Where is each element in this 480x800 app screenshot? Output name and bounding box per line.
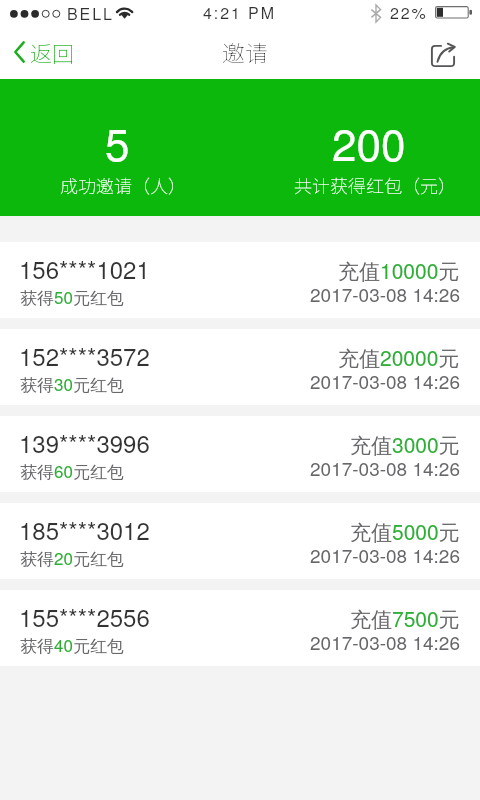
staticText: 2017-03-08 14:26 bbox=[310, 454, 460, 481]
staticText: 22% bbox=[390, 1, 428, 24]
button[interactable]: Share bbox=[418, 33, 467, 79]
staticText: 获得50元红包 bbox=[20, 284, 124, 309]
button[interactable]: 139****3996 bbox=[0, 416, 480, 492]
staticText: 2017-03-08 14:26 bbox=[310, 628, 460, 655]
staticText: 充值3000元 bbox=[350, 429, 460, 459]
staticText: 充值20000元 bbox=[338, 342, 460, 372]
staticText: 获得30元红包 bbox=[20, 371, 124, 396]
staticText: 5 bbox=[105, 110, 130, 173]
staticText: 邀请 bbox=[222, 35, 268, 68]
staticText: 获得40元红包 bbox=[20, 632, 124, 657]
staticText: BELL bbox=[67, 2, 114, 25]
staticText: 139****3996 bbox=[19, 425, 150, 459]
staticText: 185****3012 bbox=[19, 512, 150, 546]
staticText: 返回 bbox=[30, 36, 75, 68]
button[interactable]: 152****3572 bbox=[0, 329, 480, 405]
button[interactable]: 156****1021 bbox=[0, 242, 480, 318]
staticText: 2017-03-08 14:26 bbox=[310, 280, 460, 307]
staticText: 152****3572 bbox=[19, 338, 150, 372]
staticText: 2017-03-08 14:26 bbox=[310, 367, 460, 394]
staticText: 获得60元红包 bbox=[20, 458, 124, 483]
button[interactable]: 185****3012 bbox=[0, 503, 480, 579]
button[interactable]: 155****2556 bbox=[0, 590, 480, 666]
staticText: 155****2556 bbox=[19, 599, 150, 633]
staticText: 获得20元红包 bbox=[20, 545, 124, 570]
staticText: 共计获得红包（元） bbox=[294, 172, 456, 198]
staticText: 充值5000元 bbox=[350, 516, 460, 546]
staticText: 充值7500元 bbox=[350, 603, 460, 633]
staticText: 2017-03-08 14:26 bbox=[310, 541, 460, 568]
staticText: 充值10000元 bbox=[338, 255, 460, 285]
staticText: 4:21 PM bbox=[203, 1, 276, 24]
button[interactable]: 返回 bbox=[0, 33, 85, 79]
staticText: 200 bbox=[332, 110, 406, 173]
staticText: 成功邀请（人） bbox=[60, 172, 186, 198]
staticText: 156****1021 bbox=[19, 251, 150, 285]
